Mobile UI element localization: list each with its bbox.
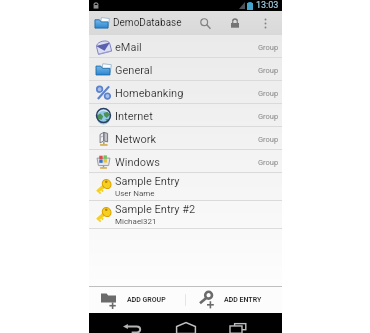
button[interactable]: ADD ENTRY — [186, 287, 282, 313]
staticText: Group — [258, 112, 279, 121]
button[interactable]: Internet — [89, 104, 282, 127]
button[interactable]: Back — [113, 313, 151, 333]
button[interactable]: Lock database — [220, 11, 250, 35]
button[interactable]: Sample Entry — [89, 173, 282, 201]
staticText: Windows — [115, 156, 160, 169]
staticText: 13:03 — [256, 0, 279, 11]
button[interactable]: More options — [250, 11, 280, 35]
staticText: Homebanking — [115, 87, 184, 100]
button[interactable]: Network — [89, 127, 282, 150]
staticText: Group — [258, 89, 279, 98]
staticText: Network — [115, 133, 157, 146]
button[interactable]: Recent apps — [219, 313, 259, 333]
button[interactable]: Windows — [89, 150, 282, 173]
staticText: Michael321 — [115, 217, 157, 226]
staticText: eMail — [115, 41, 142, 54]
staticText: User Name — [115, 189, 155, 198]
staticText: General — [115, 64, 153, 77]
staticText: Group — [258, 43, 279, 52]
button[interactable]: eMail — [89, 35, 282, 58]
staticText: Internet — [115, 110, 153, 123]
staticText: Sample Entry #2 — [115, 203, 196, 216]
button[interactable]: Homebanking — [89, 81, 282, 104]
button[interactable]: General — [89, 58, 282, 81]
staticText: DemoDatabase — [113, 17, 182, 29]
button[interactable]: ADD GROUP — [89, 287, 185, 313]
staticText: Group — [258, 66, 279, 75]
staticText: Sample Entry — [115, 175, 180, 188]
staticText: ADD ENTRY — [224, 296, 262, 304]
button[interactable]: Search — [190, 11, 220, 35]
staticText: Group — [258, 158, 279, 167]
button[interactable]: Sample Entry #2 — [89, 201, 282, 229]
staticText: ADD GROUP — [127, 296, 166, 304]
button[interactable]: Home — [166, 313, 206, 333]
staticText: Group — [258, 135, 279, 144]
